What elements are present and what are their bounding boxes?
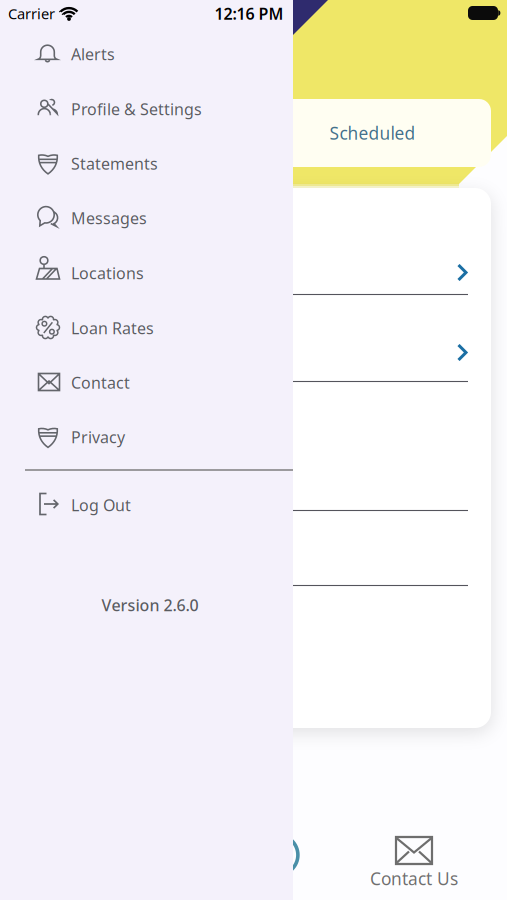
button[interactable]: Locations (35, 250, 275, 296)
button[interactable]: Scheduled (254, 99, 491, 167)
staticText: Alerts (71, 43, 115, 65)
staticText: Loan Rates (71, 317, 154, 339)
staticText: Messages (71, 207, 147, 229)
staticText: Locations (71, 262, 144, 284)
staticText: Version 2.6.0 (101, 594, 198, 616)
button[interactable]: Privacy (35, 414, 275, 460)
staticText: Privacy (71, 426, 125, 448)
button[interactable]: Contact Us (370, 834, 458, 890)
button[interactable]: Log Out (35, 482, 275, 528)
staticText: 12:16 PM (214, 3, 283, 24)
button[interactable]: Messages (35, 195, 275, 241)
staticText: Profile & Settings (71, 98, 202, 120)
staticText: Carrier (8, 4, 55, 23)
button[interactable]: Loan Rates (35, 305, 275, 351)
staticText: Log Out (71, 494, 131, 516)
staticText: Scheduled (329, 121, 415, 144)
button[interactable]: Profile & Settings (35, 86, 275, 132)
staticText: Contact Us (370, 867, 458, 890)
button[interactable]: Transfer (254, 831, 302, 879)
button[interactable]: Contact (35, 359, 275, 405)
button[interactable]: Select from account (38, 244, 468, 300)
staticText: Statements (71, 153, 158, 174)
button[interactable]: Alerts (35, 31, 275, 77)
button[interactable]: Select to account (38, 324, 468, 380)
staticText: Contact (71, 372, 130, 393)
button[interactable]: Statements (35, 140, 275, 186)
